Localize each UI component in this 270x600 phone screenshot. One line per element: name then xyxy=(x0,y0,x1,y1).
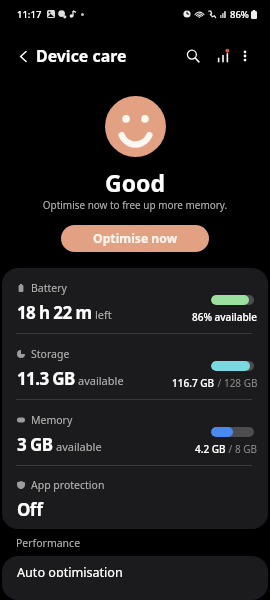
staticText: / 128 GB xyxy=(215,376,258,390)
staticText: App protection xyxy=(31,478,105,492)
button[interactable]: Search xyxy=(178,41,208,71)
staticText: 11:17 xyxy=(17,8,42,21)
button[interactable]: Storage xyxy=(2,334,268,399)
button[interactable]: Auto optimisation xyxy=(2,556,268,600)
button[interactable]: Optimise now xyxy=(61,225,209,252)
button[interactable]: Memory xyxy=(2,400,268,465)
button[interactable]: More options xyxy=(233,44,257,68)
button[interactable]: Back xyxy=(10,43,36,69)
staticText: Performance xyxy=(16,536,81,550)
button[interactable]: Diagnostics xyxy=(208,41,238,71)
staticText: Memory xyxy=(31,413,73,427)
staticText: Storage xyxy=(31,347,70,361)
staticText: Optimise now to free up more memory. xyxy=(0,198,270,212)
staticText: 3 GB xyxy=(17,433,53,456)
staticText: 86% xyxy=(230,8,249,21)
staticText: 18 h 22 m xyxy=(17,301,92,324)
staticText: 11.3 GB xyxy=(17,367,75,390)
staticText: left xyxy=(95,307,112,322)
button[interactable]: App protection xyxy=(2,466,268,529)
staticText: available xyxy=(78,373,124,388)
staticText: 4.2 GB xyxy=(195,442,226,456)
staticText: Off xyxy=(17,498,43,521)
staticText: Device care xyxy=(36,45,127,67)
staticText: 116.7 GB xyxy=(172,376,215,390)
staticText: / 8 GB xyxy=(226,442,258,456)
staticText: Optimise now xyxy=(93,230,178,247)
button[interactable]: Battery xyxy=(2,268,268,333)
staticText: available xyxy=(56,439,102,454)
staticText: Battery xyxy=(31,281,67,295)
staticText: Good xyxy=(0,167,270,198)
staticText: 86% available xyxy=(192,310,258,324)
staticText: Auto optimisation xyxy=(17,564,123,577)
